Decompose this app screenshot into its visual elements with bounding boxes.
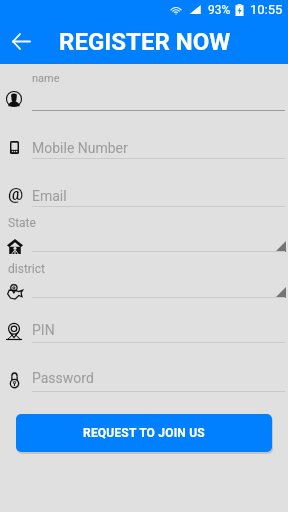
- button[interactable]: REQUEST TO JOIN US: [16, 414, 272, 452]
- button[interactable]: Mobile Number: [0, 111, 288, 159]
- staticText: name: [32, 72, 60, 85]
- staticText: @: [8, 184, 24, 204]
- staticText: district: [8, 262, 45, 276]
- staticText: State: [8, 216, 36, 230]
- button[interactable]: Back: [6, 26, 36, 56]
- button[interactable]: PIN: [0, 298, 288, 343]
- button[interactable]: district: [0, 252, 288, 298]
- staticText: PIN: [32, 322, 55, 338]
- button[interactable]: State: [0, 207, 288, 252]
- staticText: Password: [32, 370, 94, 386]
- button[interactable]: @: [0, 159, 288, 207]
- staticText: 93%: [208, 3, 231, 17]
- staticText: Email: [32, 188, 67, 204]
- staticText: REQUEST TO JOIN US: [83, 426, 205, 440]
- staticText: 10:55: [250, 2, 283, 17]
- button[interactable]: Password: [0, 343, 288, 392]
- staticText: Mobile Number: [32, 140, 128, 156]
- staticText: REGISTER NOW: [59, 28, 231, 56]
- button[interactable]: name: [0, 64, 288, 111]
